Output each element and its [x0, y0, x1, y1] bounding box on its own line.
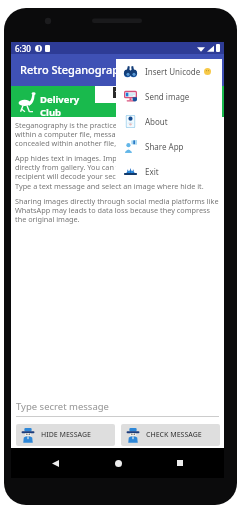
staticText: 6:30 [15, 43, 31, 54]
button[interactable]: Send image [116, 84, 222, 109]
staticText: Sharing images directly through social m… [15, 196, 223, 224]
staticText: Retro Steganography [20, 62, 132, 77]
button[interactable]: Exit [116, 159, 222, 184]
staticText: Exit [145, 166, 159, 177]
staticText: Share App [145, 141, 184, 152]
staticText: Insert Unicode [145, 66, 201, 77]
button[interactable]: Share App [116, 134, 222, 159]
staticText: Club [40, 106, 62, 119]
button[interactable]: CHECK MESSAGE [121, 424, 220, 446]
button[interactable]: Back [45, 453, 65, 473]
staticText: CHECK MESSAGE [146, 430, 202, 440]
button[interactable]: Home [108, 453, 128, 473]
button[interactable]: Recents [170, 453, 190, 473]
staticText: Test [115, 89, 127, 97]
staticText: Type a text message and select an image … [15, 181, 204, 191]
staticText: HIDE MESSAGE [41, 430, 92, 440]
staticText: App hides text in images. Important! Use… [15, 153, 218, 181]
button[interactable]: Insert Unicode [116, 59, 222, 84]
staticText: About [145, 116, 168, 127]
button[interactable]: HIDE MESSAGE [16, 424, 115, 446]
button[interactable]: About [116, 109, 222, 134]
staticText: Send image [145, 91, 190, 102]
staticText: Steganography is the practice of conceal… [15, 120, 220, 148]
staticText: Delivery [40, 93, 80, 106]
staticText: Type secret message [16, 400, 109, 413]
